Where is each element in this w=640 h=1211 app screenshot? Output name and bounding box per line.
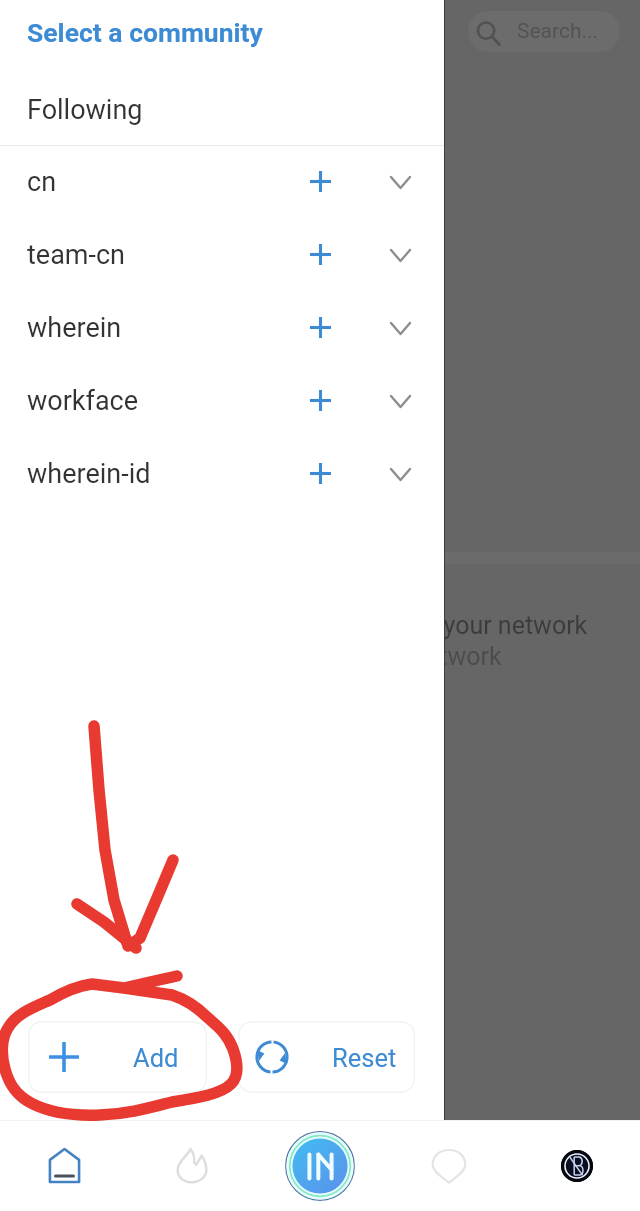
staticText: wherein xyxy=(27,312,122,344)
staticText: wherein-id xyxy=(27,458,151,490)
button[interactable]: wherein xyxy=(0,292,445,365)
button[interactable]: Profile xyxy=(513,1120,640,1211)
staticText: workface xyxy=(27,385,139,417)
button[interactable]: Expand wherein xyxy=(376,304,424,352)
button[interactable]: Expand team-cn xyxy=(376,231,424,279)
button[interactable]: Search xyxy=(468,11,620,52)
button[interactable]: Post xyxy=(255,1120,385,1211)
button[interactable]: Follow wherein xyxy=(296,303,344,351)
staticText: Grow your network xyxy=(379,611,588,640)
staticText: cn xyxy=(27,166,57,198)
button[interactable]: Expand workface xyxy=(376,377,424,425)
button[interactable]: Messages xyxy=(385,1120,513,1211)
button[interactable]: Follow wherein-id xyxy=(296,449,344,497)
button[interactable]: Home xyxy=(0,1120,128,1211)
button[interactable]: workface xyxy=(0,365,445,438)
button[interactable]: wherein-id xyxy=(0,438,445,511)
button[interactable]: Reset xyxy=(238,1021,415,1093)
button[interactable]: Add xyxy=(28,1021,207,1093)
button[interactable]: Trending xyxy=(128,1120,255,1211)
button[interactable]: Expand wherein-id xyxy=(376,450,424,498)
staticText: Build your network xyxy=(296,642,502,671)
button[interactable]: Follow team-cn xyxy=(296,230,344,278)
button[interactable]: Follow cn xyxy=(296,157,344,205)
staticText: Search... xyxy=(517,19,599,44)
staticText: team-cn xyxy=(27,239,126,271)
button[interactable]: team-cn xyxy=(0,219,445,292)
button[interactable]: Expand cn xyxy=(376,158,424,206)
staticText: Following xyxy=(27,94,143,126)
button[interactable]: cn xyxy=(0,146,445,219)
button[interactable]: Follow workface xyxy=(296,376,344,424)
staticText: Reset xyxy=(332,1043,397,1073)
staticText: Select a community xyxy=(27,17,263,48)
staticText: Add xyxy=(133,1043,179,1073)
